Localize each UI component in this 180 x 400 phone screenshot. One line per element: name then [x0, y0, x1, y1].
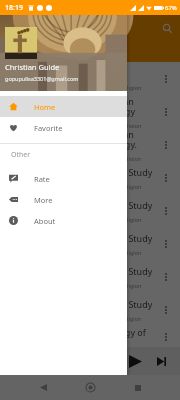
- staticText: Biblical Study: [96, 265, 153, 277]
- staticText: gopupulisa3301@gmail.com: [5, 75, 79, 82]
- staticText: Christian Guide: [5, 62, 60, 72]
- button[interactable]: Home: [0, 96, 127, 117]
- button[interactable]: Biblical Study: [0, 260, 180, 293]
- button[interactable]: Search: [157, 18, 177, 38]
- button[interactable]: Biblical Study: [0, 161, 180, 194]
- button[interactable]: More options: [157, 202, 175, 220]
- staticText: Favorite: [34, 123, 63, 133]
- button[interactable]: Play: [124, 350, 146, 372]
- button[interactable]: Biblical Study: [0, 227, 180, 260]
- button[interactable]: More options: [157, 268, 175, 286]
- staticText: About: [34, 216, 56, 226]
- staticText: HAROLD BIRNEY: [52, 40, 124, 52]
- button[interactable]: Biblical Study: [0, 194, 180, 227]
- button[interactable]: About: [0, 210, 127, 231]
- staticText: Christian Religion: [96, 315, 142, 322]
- button[interactable]: Rate: [0, 168, 127, 189]
- staticText: Christian Religion: [96, 183, 142, 190]
- button[interactable]: Christian Theology.: [0, 128, 180, 161]
- staticText: Biblical Study: [96, 298, 153, 310]
- staticText: More: [34, 195, 53, 205]
- staticText: Christian Theology: [96, 95, 157, 117]
- button[interactable]: More options: [157, 136, 175, 154]
- staticText: Biblical Study: [96, 232, 153, 244]
- staticText: Christian Religion: [96, 216, 142, 223]
- staticText: Theology of the Old Testament of Israel: [96, 326, 157, 347]
- button[interactable]: More: [0, 189, 127, 210]
- button[interactable]: More options: [157, 70, 175, 88]
- button[interactable]: More options: [157, 235, 175, 253]
- button[interactable]: More options: [157, 301, 175, 319]
- staticText: Christian Religion: [96, 282, 142, 289]
- staticText: Other: [11, 150, 31, 160]
- button[interactable]: More options: [157, 328, 175, 346]
- staticText: Christian Religion: [96, 84, 142, 91]
- button[interactable]: Theology of the Old Testament of Israel: [0, 326, 180, 347]
- staticText: Christian Religion: [96, 249, 142, 256]
- button[interactable]: More options: [157, 103, 175, 121]
- staticText: Biblical Study: [96, 199, 153, 211]
- button[interactable]: Biblical Study: [0, 293, 180, 326]
- staticText: Biblical Study: [96, 166, 153, 178]
- button[interactable]: More options: [157, 169, 175, 187]
- staticText: 67%: [165, 4, 177, 12]
- button[interactable]: Psalms: [0, 62, 180, 95]
- staticText: Christian Religion: [96, 122, 142, 128]
- staticText: 18:19: [5, 3, 23, 13]
- button[interactable]: Next: [150, 350, 172, 372]
- staticText: Home: [34, 102, 56, 112]
- staticText: Christian Theology.: [96, 128, 157, 150]
- staticText: Rate: [34, 174, 50, 184]
- staticText: Psalms: [96, 67, 126, 79]
- button[interactable]: Christian Theology: [0, 95, 180, 128]
- staticText: Christian Religion: [96, 155, 142, 161]
- button[interactable]: Favorite: [0, 117, 127, 138]
